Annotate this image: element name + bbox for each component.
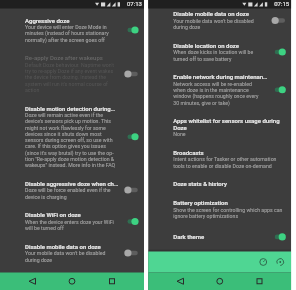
staticText: Disable mobile data on doze bbox=[173, 11, 249, 18]
button[interactable]: Switch on bbox=[272, 45, 288, 58]
staticText: None bbox=[173, 131, 186, 137]
button[interactable]: Switch on bbox=[124, 130, 140, 143]
staticText: Default Doze behaviour. Naptime won't tr… bbox=[25, 62, 114, 93]
staticText: Apps whitelist for sensors usage during … bbox=[173, 118, 280, 131]
staticText: Intent actions for Tasker or other autom… bbox=[173, 156, 277, 169]
button[interactable]: Home bbox=[212, 273, 228, 289]
button[interactable]: Recents bbox=[104, 273, 120, 289]
button[interactable]: Switch off bbox=[124, 67, 140, 80]
staticText: Disable motion detection during… bbox=[25, 105, 115, 112]
button[interactable]: Switch on bbox=[124, 215, 140, 228]
button[interactable]: Broadcasts bbox=[148, 143, 291, 175]
staticText: Disable aggressive doze when ch… bbox=[25, 180, 118, 187]
staticText: Re-apply Doze after wakeups bbox=[25, 55, 103, 62]
staticText: 07:13 bbox=[127, 1, 142, 8]
staticText: Doze will remain active even if the devi… bbox=[25, 112, 115, 168]
button[interactable]: Disable mobile data on doze bbox=[0, 237, 144, 269]
staticText: Battery optimization bbox=[173, 200, 228, 207]
staticText: When doze kicks in location will be turn… bbox=[173, 49, 254, 62]
button[interactable]: Back bbox=[172, 273, 188, 289]
staticText: Enable network during maintenan… bbox=[173, 74, 268, 81]
button[interactable]: Switch on bbox=[124, 23, 140, 36]
button[interactable]: Dark theme bbox=[148, 225, 291, 249]
button[interactable]: Switch on bbox=[272, 83, 288, 96]
button[interactable]: Doze stats & history bbox=[148, 175, 291, 194]
button[interactable]: Enable network during maintenan… bbox=[148, 68, 291, 112]
button[interactable]: Disable aggressive doze when ch… bbox=[0, 174, 144, 206]
button[interactable]: Aggressive doze bbox=[0, 8, 144, 49]
staticText: Network access will be re-enabled when d… bbox=[173, 81, 259, 106]
staticText: Your mobile data won't be disabled durin… bbox=[25, 250, 105, 263]
button[interactable]: Doze timer bbox=[257, 256, 269, 268]
button[interactable]: Apps whitelist for sensors usage during … bbox=[148, 112, 291, 143]
staticText: Show the screen for controlling which ap… bbox=[173, 207, 283, 219]
button[interactable]: History bbox=[274, 256, 286, 268]
button[interactable]: Disable location on doze bbox=[148, 36, 291, 68]
staticText: Your mobile data won't be disabled durin… bbox=[173, 18, 254, 30]
staticText: Doze stats & history bbox=[173, 181, 227, 188]
button[interactable]: Switch on bbox=[272, 231, 288, 243]
button[interactable]: Switch off bbox=[124, 246, 140, 259]
button[interactable]: Disable mobile data on doze bbox=[148, 8, 291, 36]
button[interactable]: Disable WiFi on doze bbox=[0, 206, 144, 237]
button[interactable]: Home bbox=[64, 273, 80, 289]
staticText: 07:15 bbox=[274, 1, 289, 8]
button[interactable]: Disable motion detection during… bbox=[0, 99, 144, 174]
button[interactable]: Recents bbox=[251, 273, 267, 289]
button[interactable]: Re-apply Doze after wakeups bbox=[0, 49, 144, 99]
staticText: Aggressive doze bbox=[25, 17, 69, 24]
staticText: Disable WiFi on doze bbox=[25, 212, 81, 219]
button[interactable]: Battery optimization bbox=[148, 194, 291, 225]
staticText: When the device enters doze your WiFi wi… bbox=[25, 219, 114, 231]
staticText: Disable location on doze bbox=[173, 42, 239, 49]
staticText: Your device will enter Doze Mode in minu… bbox=[25, 24, 109, 43]
button[interactable]: Back bbox=[24, 273, 40, 289]
button[interactable]: Switch off bbox=[124, 183, 140, 196]
staticText: Broadcasts bbox=[173, 149, 204, 156]
staticText: Disable mobile data on doze bbox=[25, 243, 101, 250]
staticText: Dark theme bbox=[173, 233, 204, 240]
staticText: Doze will be force enabled even if the d… bbox=[25, 187, 111, 200]
button[interactable]: Switch off bbox=[272, 14, 288, 27]
